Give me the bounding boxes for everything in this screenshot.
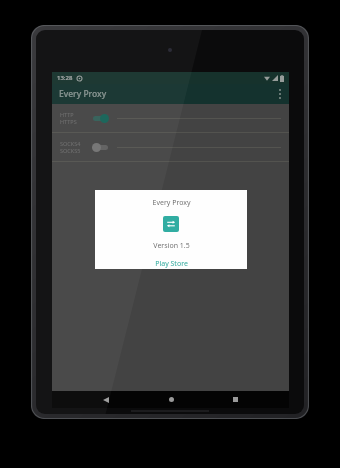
button[interactable]: More options: [271, 85, 289, 103]
button[interactable]: Switch off: [92, 142, 109, 152]
staticText: Play Store: [155, 259, 188, 269]
button[interactable]: Back: [96, 391, 116, 408]
button[interactable]: Home: [161, 391, 181, 408]
staticText: Every Proxy: [59, 88, 107, 100]
button[interactable]: Play Store: [155, 259, 188, 269]
staticText: Version 1.5: [153, 241, 190, 251]
button[interactable]: SOCKS4: [52, 133, 289, 161]
staticText: 13:28: [57, 74, 73, 82]
staticText: Every Proxy: [152, 198, 191, 208]
staticText: HTTPS: [60, 118, 77, 125]
staticText: SOCKS5: [60, 147, 81, 154]
button[interactable]: Switch on: [92, 113, 109, 123]
button[interactable]: HTTP: [52, 104, 289, 132]
staticText: SOCKS4: [60, 140, 81, 147]
staticText: HTTP: [60, 111, 74, 118]
button[interactable]: Recent apps: [225, 391, 245, 408]
